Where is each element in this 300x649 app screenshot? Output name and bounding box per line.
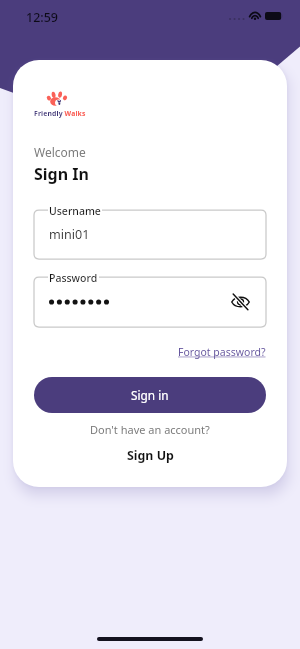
staticText: Username xyxy=(49,204,101,218)
staticText: Don't have an account? xyxy=(90,422,210,437)
button[interactable]: Sign in xyxy=(34,377,266,413)
staticText: Forgot password? xyxy=(178,345,266,359)
staticText: Sign in xyxy=(131,387,169,403)
staticText: Friendly Walks xyxy=(34,109,86,118)
staticText: Sign In xyxy=(34,163,89,185)
staticText: Password xyxy=(49,271,98,285)
staticText: mini01 xyxy=(49,226,90,243)
staticText: Welcome xyxy=(34,144,86,160)
button[interactable]: Sign Up xyxy=(127,447,174,464)
button[interactable]: Toggle password visibility xyxy=(227,289,253,315)
staticText: Sign Up xyxy=(127,447,174,464)
button[interactable]: Forgot password? xyxy=(178,345,266,359)
staticText: 12:59 xyxy=(26,9,59,26)
